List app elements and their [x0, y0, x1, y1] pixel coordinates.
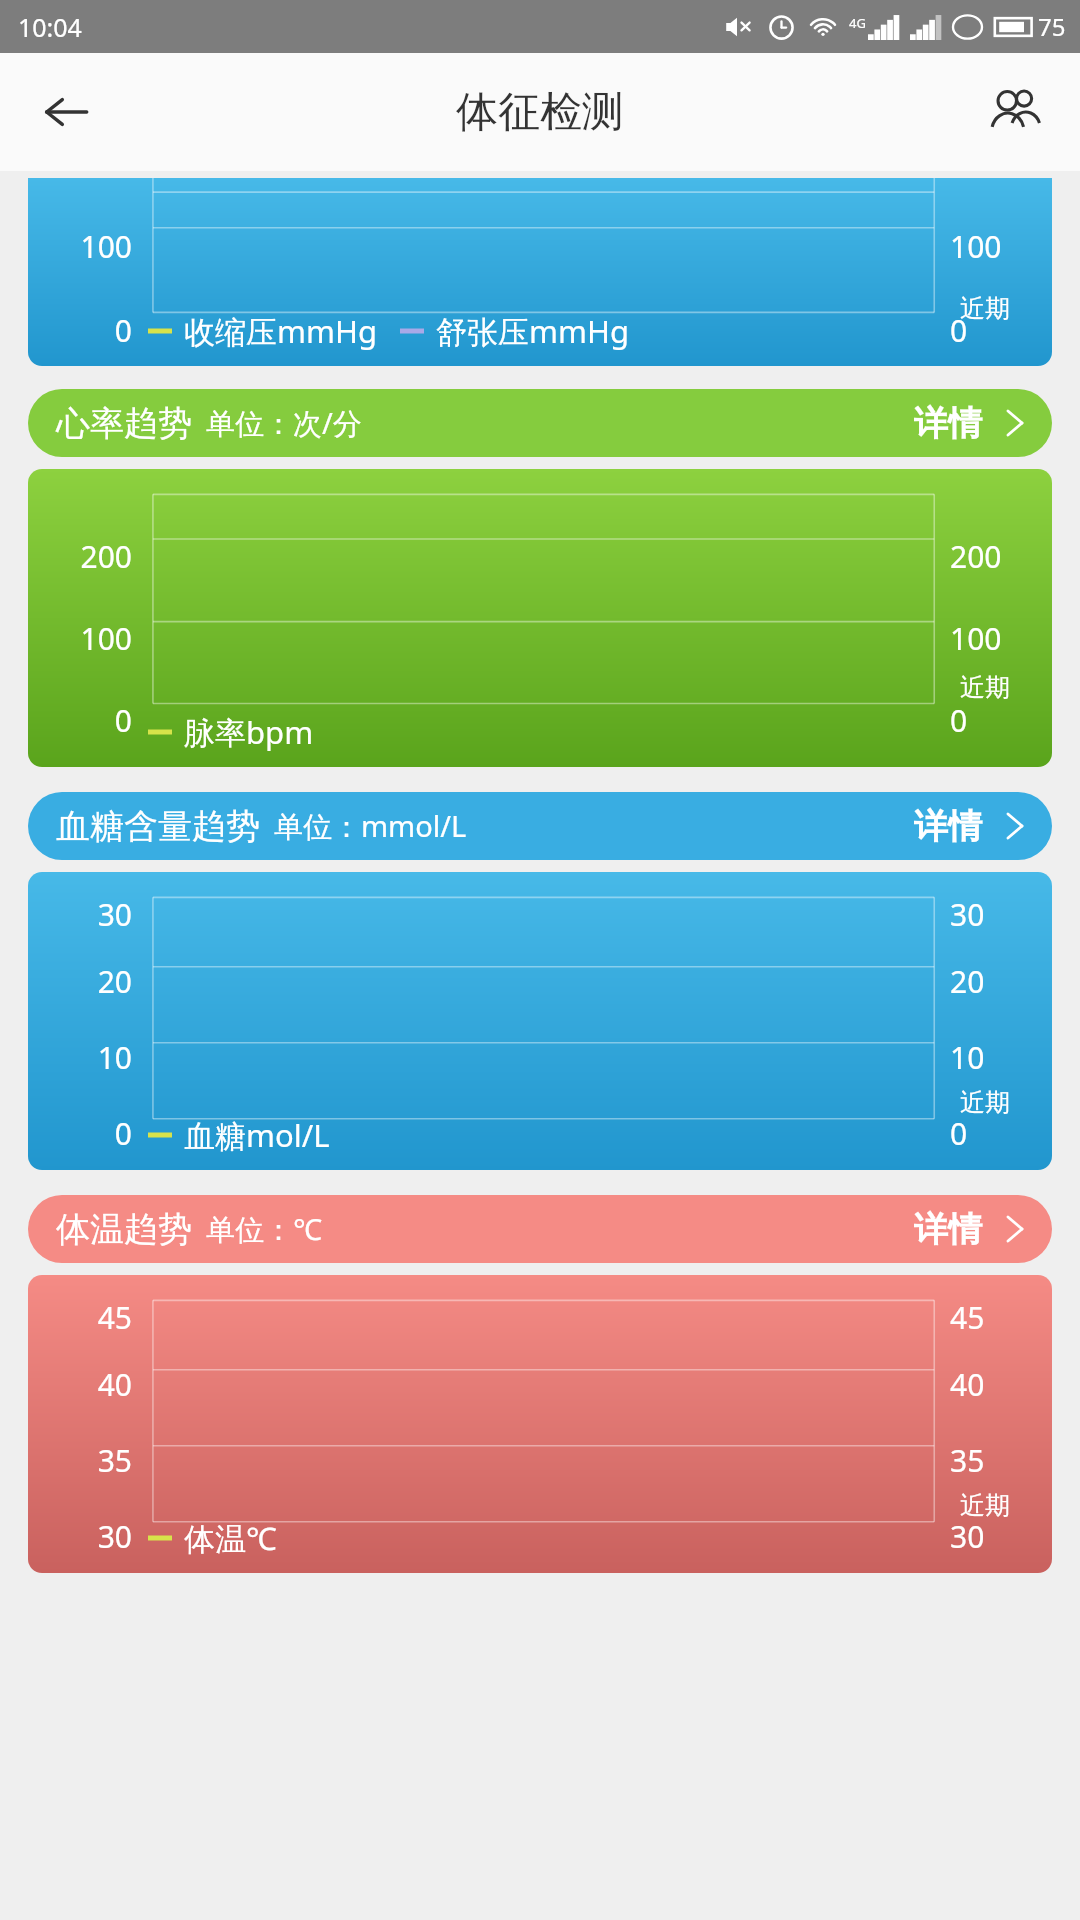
staticText: 45	[950, 1297, 985, 1338]
button[interactable]: 联系人	[976, 74, 1052, 150]
button[interactable]: 返回	[30, 76, 102, 148]
button[interactable]: 100	[28, 178, 1052, 366]
button[interactable]: 45	[28, 1275, 1052, 1573]
staticText: 单位：℃	[206, 1209, 322, 1249]
staticText: 单位：mmol/L	[274, 806, 467, 846]
staticText: 心率趋势	[56, 402, 192, 445]
staticText: 100	[80, 226, 132, 267]
staticText: 45	[97, 1297, 132, 1338]
staticText: 体征检测	[456, 86, 624, 139]
staticText: 0	[950, 700, 968, 741]
staticText: 35	[97, 1440, 132, 1481]
staticText: 10	[97, 1037, 132, 1078]
staticText: 0	[114, 700, 132, 741]
staticText: 血糖mol/L	[184, 1114, 330, 1156]
staticText: 75	[1038, 10, 1066, 43]
staticText: 30	[950, 894, 985, 935]
staticText: 100	[80, 618, 132, 659]
staticText: 单位：次/分	[206, 403, 362, 443]
staticText: 35	[950, 1440, 985, 1481]
staticText: 10:04	[18, 10, 82, 44]
staticText: 0	[114, 1113, 132, 1154]
button[interactable]: 血糖含量趋势	[28, 792, 1052, 860]
staticText: 舒张压mmHg	[436, 310, 630, 352]
staticText: 近期	[960, 1087, 1010, 1118]
staticText: 0	[950, 1113, 968, 1154]
staticText: 20	[950, 961, 985, 1002]
staticText: 30	[97, 894, 132, 935]
staticText: 脉率bpm	[184, 711, 314, 753]
staticText: 200	[950, 536, 1002, 577]
staticText: 0	[950, 310, 968, 351]
button[interactable]: 200	[28, 469, 1052, 767]
staticText: 100	[950, 226, 1002, 267]
staticText: 10	[950, 1037, 985, 1078]
staticText: 40	[950, 1364, 985, 1405]
button[interactable]: 体温趋势	[28, 1195, 1052, 1263]
staticText: 近期	[960, 293, 1010, 324]
staticText: 4G	[849, 14, 866, 32]
staticText: 详情	[914, 1208, 982, 1251]
staticText: 20	[97, 961, 132, 1002]
staticText: 收缩压mmHg	[184, 310, 378, 352]
staticText: 100	[950, 618, 1002, 659]
staticText: 0	[114, 310, 132, 351]
staticText: 30	[97, 1516, 132, 1557]
staticText: 30	[950, 1516, 985, 1557]
staticText: 详情	[914, 805, 982, 848]
staticText: 近期	[960, 1490, 1010, 1521]
button[interactable]: 30	[28, 872, 1052, 1170]
staticText: 血糖含量趋势	[56, 805, 260, 848]
staticText: 40	[97, 1364, 132, 1405]
staticText: 体温℃	[184, 1517, 277, 1559]
staticText: 200	[80, 536, 132, 577]
staticText: 详情	[914, 402, 982, 445]
staticText: 体温趋势	[56, 1208, 192, 1251]
button[interactable]: 心率趋势	[28, 389, 1052, 457]
staticText: 近期	[960, 672, 1010, 703]
